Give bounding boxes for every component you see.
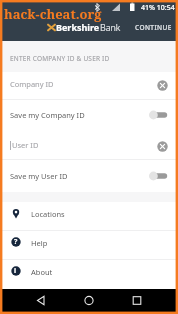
staticText: ENTER COMPANY ID & USER ID <box>10 54 110 63</box>
other: Clear Company ID <box>157 80 168 91</box>
button[interactable]: Save my Company ID <box>0 103 178 127</box>
button[interactable]: Locations <box>0 202 178 230</box>
staticText: Locations <box>31 209 65 219</box>
button[interactable]: Company ID <box>0 71 178 97</box>
staticText: i <box>14 266 17 276</box>
staticText: About <box>31 267 53 277</box>
staticText: Help <box>31 238 48 248</box>
staticText: Bank <box>100 21 121 33</box>
button[interactable]: ? <box>0 231 178 259</box>
staticText: Save my Company ID <box>10 110 85 120</box>
staticText: 41% 10:54 <box>141 3 175 13</box>
staticText: Company ID <box>10 79 54 89</box>
button[interactable]: User ID <box>0 132 178 158</box>
staticText: hack-cheat.org <box>4 5 102 23</box>
other: Clear User ID <box>157 141 168 152</box>
button[interactable]: CONTINUE <box>129 20 178 35</box>
staticText: ? <box>14 237 18 247</box>
button[interactable]: i <box>0 260 178 288</box>
staticText: Berkshire <box>56 21 100 33</box>
staticText: User ID <box>12 140 39 150</box>
staticText: CONTINUE <box>135 23 172 32</box>
staticText: Save my User ID <box>10 171 68 181</box>
button[interactable]: Save my User ID <box>0 164 178 188</box>
